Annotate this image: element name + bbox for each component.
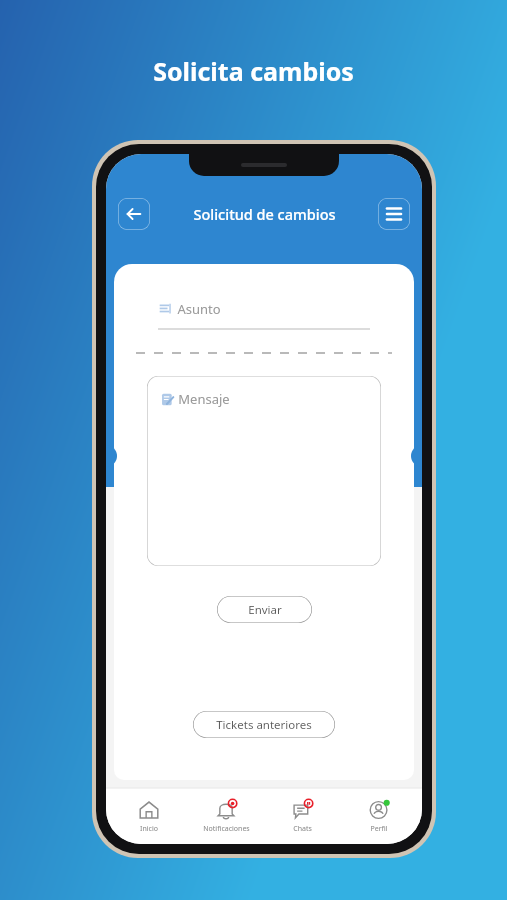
staticText: Perfil (370, 824, 388, 834)
button[interactable]: Perfil (345, 794, 413, 839)
button[interactable]: Chats (268, 794, 336, 839)
staticText: Inicio (140, 824, 158, 834)
button[interactable]: Mensaje (147, 376, 381, 566)
staticText: Tickets anteriores (216, 717, 312, 733)
staticText: Asunto (177, 300, 221, 318)
staticText: Solicitud de cambios (193, 204, 336, 224)
button[interactable]: Asunto (158, 300, 370, 330)
button[interactable]: Back (118, 198, 150, 230)
staticText: Solicita cambios (153, 54, 354, 88)
staticText: Chats (293, 824, 312, 834)
button[interactable]: Enviar (217, 596, 312, 623)
button[interactable]: Notificaciones (192, 794, 260, 839)
button[interactable]: Tickets anteriores (193, 711, 335, 738)
button[interactable]: Inicio (115, 794, 183, 839)
staticText: Enviar (248, 602, 282, 618)
button[interactable]: Menu (378, 198, 410, 230)
staticText: Notificaciones (203, 824, 250, 834)
staticText: Mensaje (178, 390, 230, 408)
